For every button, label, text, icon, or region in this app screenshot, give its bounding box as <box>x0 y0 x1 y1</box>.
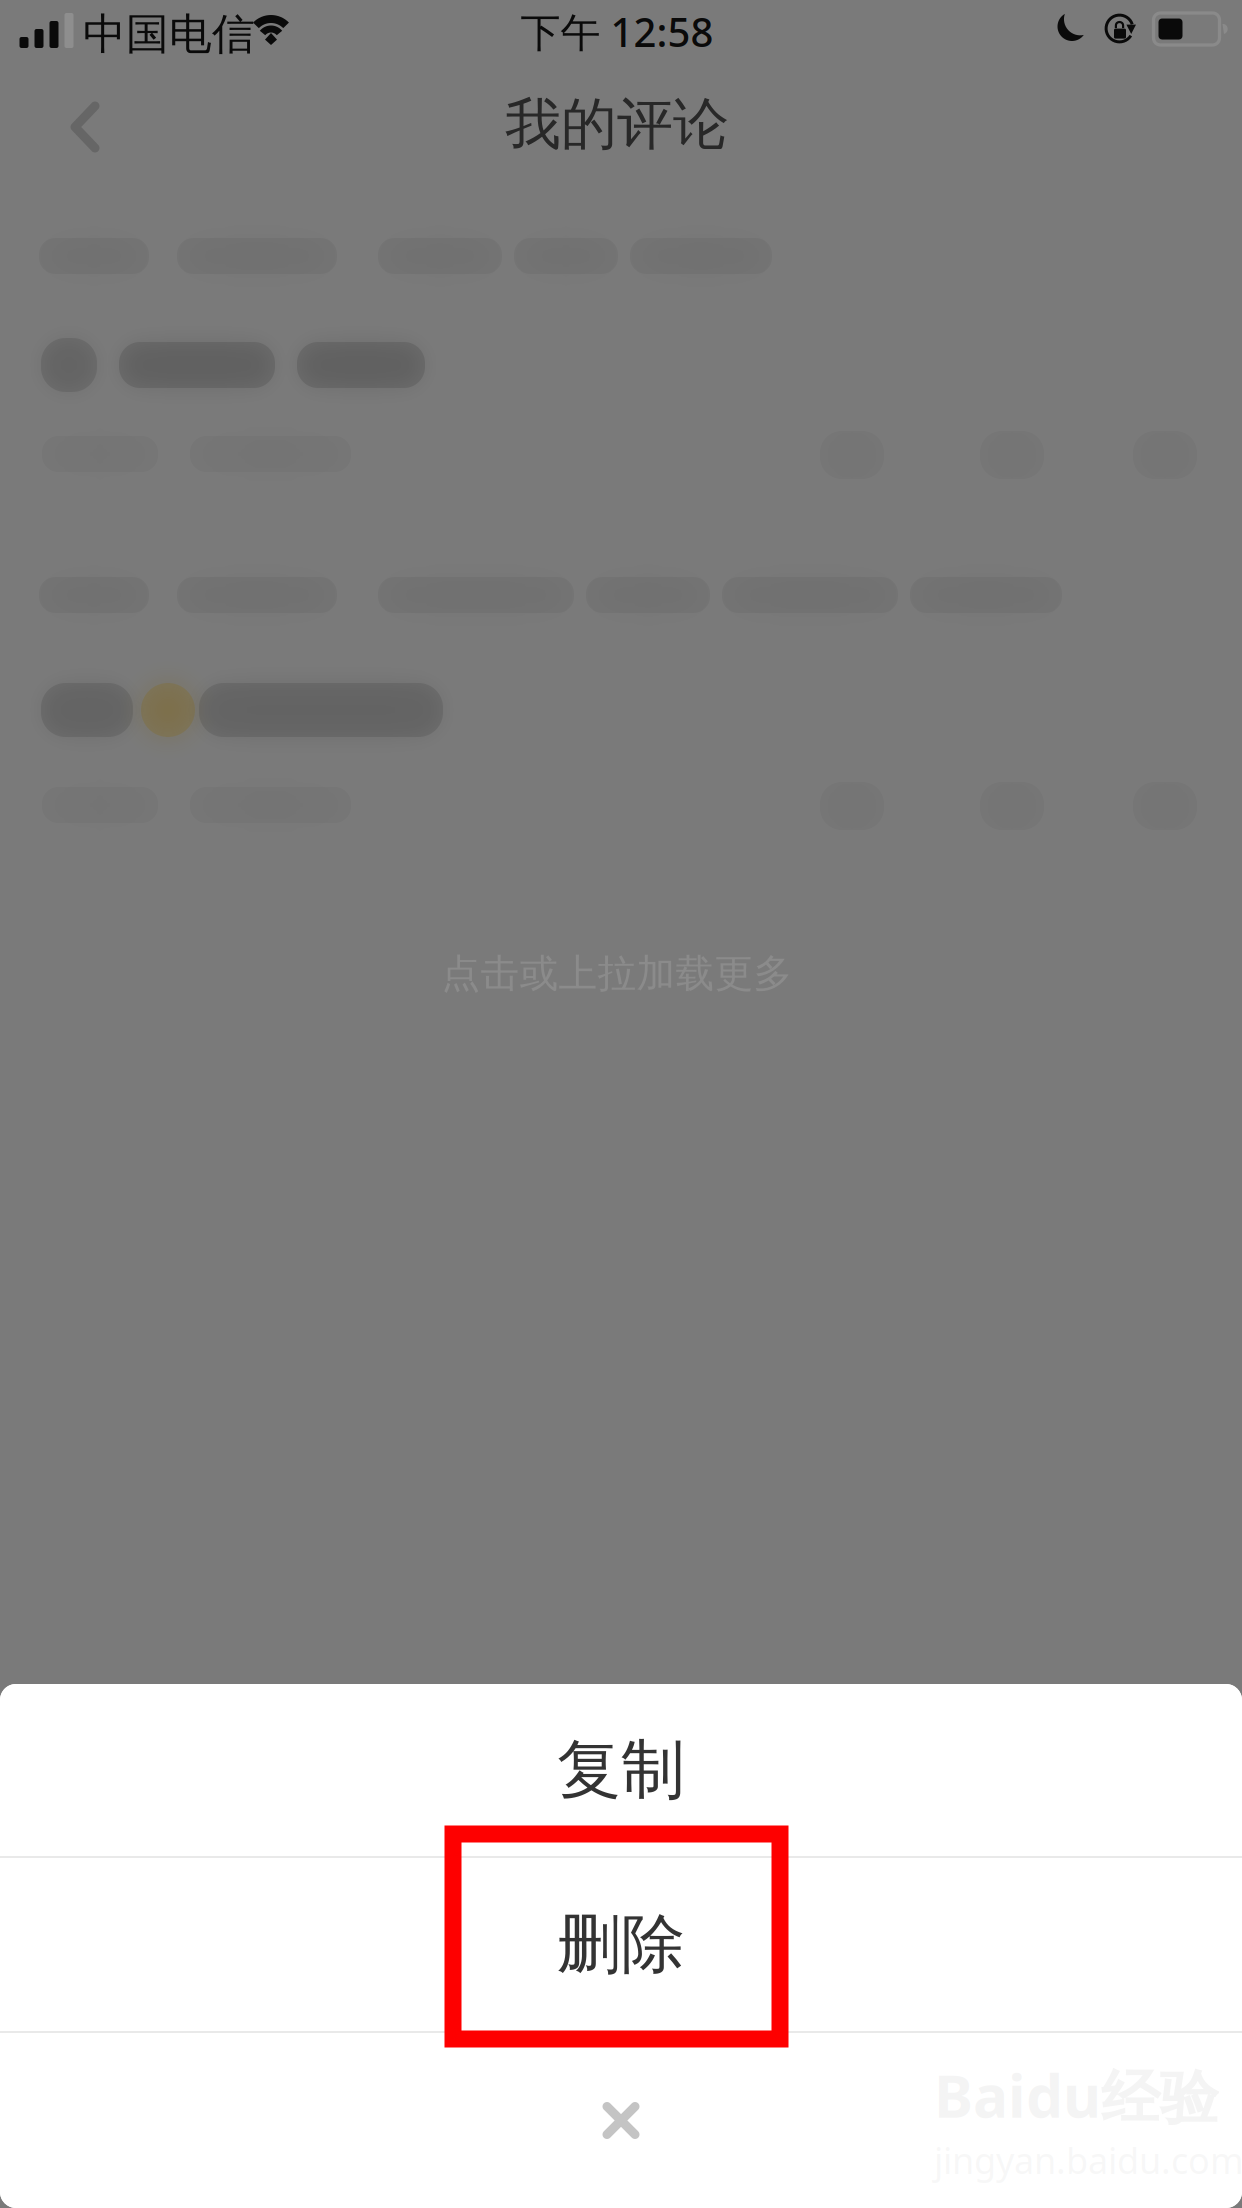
button[interactable]: 复制 <box>0 1684 1242 1856</box>
button[interactable]: 删除 <box>0 1858 1242 2031</box>
staticText: 复制 <box>557 1731 685 1809</box>
staticText: 点击或上拉加载更多 <box>441 950 792 997</box>
button[interactable]: Close <box>0 2033 1242 2208</box>
staticText: 删除 <box>557 1905 685 1984</box>
staticText: 下午 12:58 <box>520 5 713 58</box>
staticText: 中国电信 <box>83 8 255 60</box>
staticText: Baidu经验 <box>934 2056 1219 2134</box>
button[interactable]: Back <box>40 80 130 174</box>
staticText: 我的评论 <box>505 90 729 159</box>
